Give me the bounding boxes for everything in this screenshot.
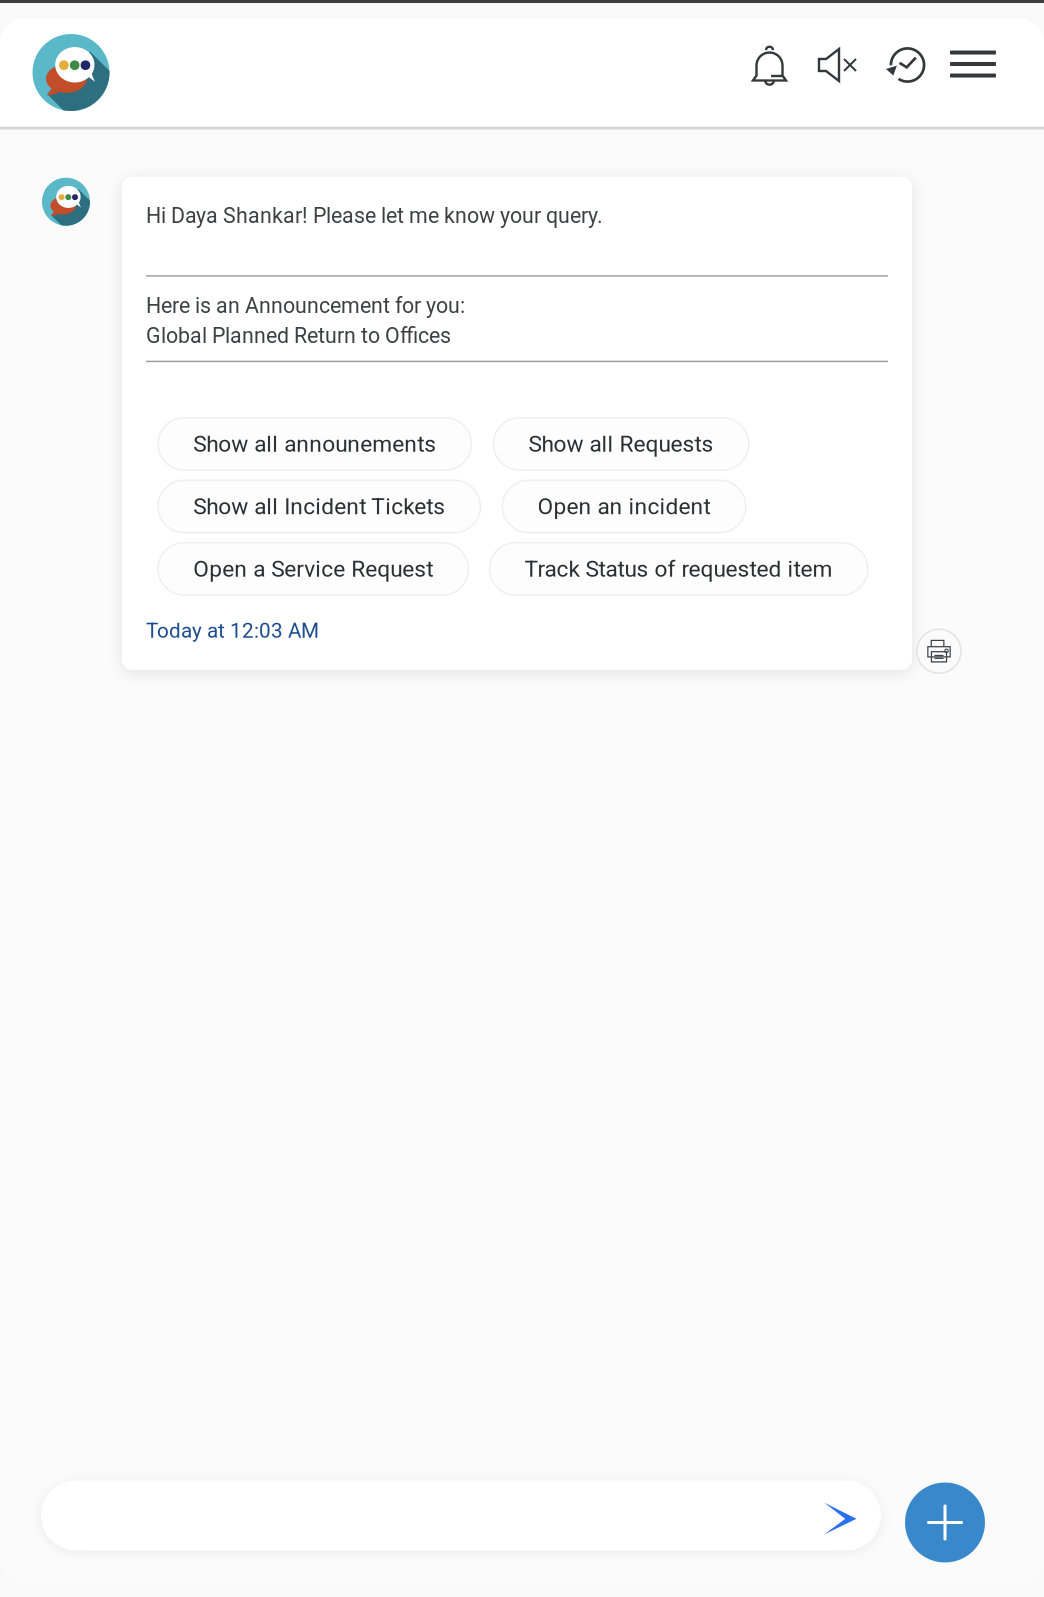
staticText: Show all Incident Tickets xyxy=(193,493,445,520)
button[interactable]: History xyxy=(880,37,935,92)
button[interactable]: Mute xyxy=(809,39,866,91)
staticText: Hi Daya Shankar! Please let me know your… xyxy=(146,203,603,228)
button[interactable]: Print xyxy=(917,629,961,673)
staticText: Global Planned Return to Offices xyxy=(146,323,451,348)
button[interactable]: Menu xyxy=(941,41,1005,86)
button[interactable]: Show all Incident Tickets xyxy=(158,480,480,533)
button[interactable]: Add attachment xyxy=(905,1482,985,1562)
button[interactable]: Assistant xyxy=(32,34,109,111)
button[interactable]: Send xyxy=(813,1491,868,1546)
staticText: Open an incident xyxy=(538,493,711,520)
button[interactable]: Show all Requests xyxy=(493,418,749,470)
button[interactable]: Open a Service Request xyxy=(158,543,468,595)
button[interactable]: Track Status of requested item xyxy=(489,543,868,595)
button[interactable]: Notifications xyxy=(744,36,795,93)
staticText: Open a Service Request xyxy=(193,556,433,582)
staticText: Track Status of requested item xyxy=(525,556,833,582)
staticText: Today at 12:03 AM xyxy=(146,619,319,643)
staticText: Here is an Announcement for you: xyxy=(146,293,465,318)
button[interactable]: Open an incident xyxy=(502,480,746,533)
staticText: Show all announements xyxy=(193,431,436,457)
staticText: Show all Requests xyxy=(529,431,714,457)
button[interactable]: Show all announements xyxy=(158,418,471,470)
